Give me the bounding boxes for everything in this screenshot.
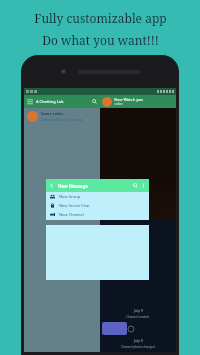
staticText: New Group — [59, 194, 81, 199]
other: Search chats — [92, 99, 97, 104]
button[interactable]: Menu — [24, 95, 100, 108]
other: Back — [49, 183, 54, 188]
staticText: July 9 — [134, 308, 143, 313]
other: Search contacts — [133, 183, 138, 188]
other: Menu — [27, 99, 33, 105]
staticText: New Channel — [59, 212, 84, 217]
button[interactable]: New Watch you — [100, 95, 176, 108]
button[interactable]: New Channel — [46, 210, 149, 219]
staticText: Same twitc... — [41, 111, 67, 116]
staticText: online — [114, 102, 123, 106]
staticText: Channel created — [126, 315, 150, 319]
button[interactable]: Same twitc... — [24, 108, 100, 125]
staticText: July 9 — [134, 338, 143, 343]
button[interactable]: New Secret Chat — [46, 201, 149, 210]
other: Attachment — [128, 326, 134, 332]
button[interactable] — [102, 322, 127, 335]
button[interactable]: Back — [46, 179, 149, 192]
staticText: Fully customizable app — [34, 10, 167, 26]
other: More options — [141, 183, 146, 188]
staticText: A Chatting Lab — [36, 99, 64, 104]
staticText: Channel photo changed — [121, 345, 155, 349]
staticText: Download to be message — [41, 117, 83, 122]
staticText: New Secret Chat — [59, 203, 90, 208]
button[interactable]: New Group — [46, 192, 149, 201]
staticText: Do what you want!!! — [42, 32, 159, 48]
staticText: New Watch you — [114, 97, 144, 102]
staticText: New Message — [58, 183, 88, 189]
